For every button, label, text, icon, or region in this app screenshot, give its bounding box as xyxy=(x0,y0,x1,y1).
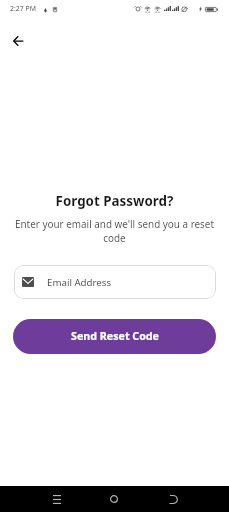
staticText: Send Reset Code xyxy=(71,329,159,344)
button[interactable]: Send Reset Code xyxy=(13,319,216,354)
button[interactable]: Back xyxy=(145,486,201,512)
staticText: Forgot Password? xyxy=(0,192,229,210)
button[interactable]: Home xyxy=(86,486,142,512)
button[interactable]: Recent apps xyxy=(29,486,85,512)
staticText: Enter your email and we'll send you a re… xyxy=(12,217,217,245)
button[interactable]: Back xyxy=(6,29,30,53)
button[interactable]: Email Address xyxy=(14,265,216,299)
staticText: Email Address xyxy=(47,276,112,289)
staticText: 2:27 PM xyxy=(10,4,36,13)
